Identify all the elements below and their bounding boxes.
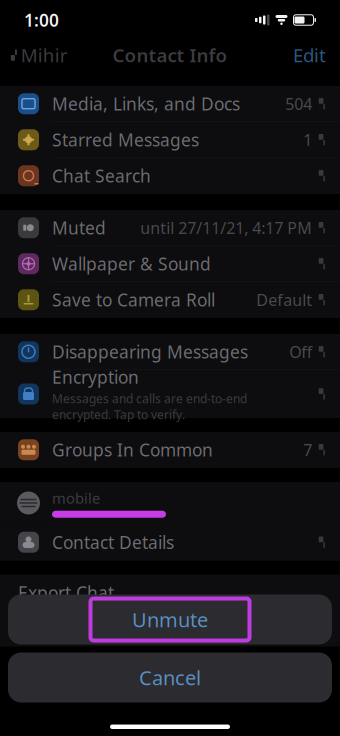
staticText: Messages and calls are end-to-end encryp… (52, 391, 247, 422)
staticText: Default (256, 289, 312, 310)
button[interactable]: Edit (293, 37, 340, 73)
button[interactable]: Wallpaper & Sound (0, 246, 340, 282)
staticText: Encryption (52, 366, 139, 389)
button[interactable]: Encryption (0, 370, 340, 418)
staticText: Media, Links, and Docs (52, 92, 240, 115)
staticText: Chat Search (52, 164, 151, 187)
staticText: Export Chat (18, 581, 114, 604)
staticText: 7 (303, 439, 312, 460)
staticText: Block Mihir (18, 617, 107, 640)
button[interactable]: mobile (0, 482, 340, 524)
staticText: Off (289, 341, 312, 362)
button[interactable]: Chat Search (0, 158, 340, 194)
staticText: 1:00 (24, 8, 59, 31)
button[interactable]: Unmute (8, 594, 332, 644)
staticText: Cancel (139, 664, 201, 691)
staticText: Edit (293, 43, 326, 67)
staticText: 504 (285, 93, 312, 114)
button[interactable]: Media, Links, and Docs (0, 86, 340, 122)
staticText: Contact Details (52, 531, 174, 554)
staticText: Contact Info (112, 43, 227, 67)
button[interactable]: Groups In Common (0, 432, 340, 468)
staticText: Muted (52, 216, 106, 239)
button[interactable]: Muted (0, 210, 340, 246)
staticText: Groups In Common (52, 438, 213, 461)
button[interactable]: Disappearing Messages (0, 334, 340, 370)
staticText: Save to Camera Roll (52, 288, 215, 311)
button[interactable]: Cancel (8, 652, 332, 702)
staticText: mobile (52, 488, 100, 508)
staticText: 1 (303, 129, 312, 150)
staticText: Starred Messages (52, 128, 199, 151)
button[interactable]: Save to Camera Roll (0, 282, 340, 318)
staticText: until 27/11/21, 4:17 PM (140, 217, 312, 238)
staticText: Disappearing Messages (52, 340, 248, 363)
button[interactable]: Contact Details (0, 524, 340, 560)
staticText: Unmute (132, 606, 208, 633)
staticText: Mihir (21, 43, 68, 67)
button[interactable]: Starred Messages (0, 122, 340, 158)
button[interactable]: Mihir (0, 37, 68, 73)
staticText: Wallpaper & Sound (52, 252, 211, 275)
